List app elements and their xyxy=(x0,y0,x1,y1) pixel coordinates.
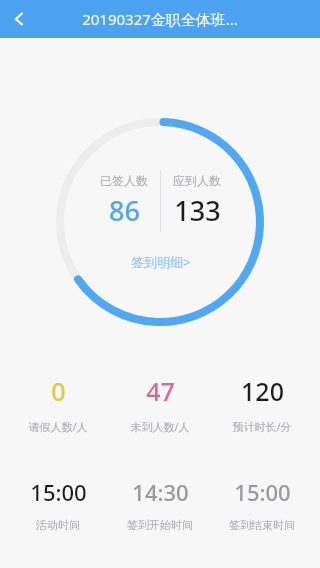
button[interactable]: 14:30 xyxy=(110,475,210,534)
button[interactable]: 15:00 xyxy=(212,475,312,534)
staticText: 应到人数 xyxy=(173,173,221,188)
staticText: 86 xyxy=(109,192,140,229)
button[interactable]: 15:00 xyxy=(8,475,108,534)
staticText: 20190327金职全体班... xyxy=(82,9,238,29)
staticText: 已签人数 xyxy=(100,173,148,188)
staticText: 请假人数/人 xyxy=(28,419,88,434)
staticText: 120 xyxy=(241,374,284,408)
staticText: 活动时间 xyxy=(36,518,80,532)
staticText: 签到开始时间 xyxy=(127,518,193,532)
button[interactable]: 签到明细> xyxy=(123,250,199,274)
staticText: 预计时长/分 xyxy=(232,419,292,434)
button[interactable]: 47 xyxy=(110,372,210,436)
button[interactable]: Back xyxy=(0,0,38,38)
staticText: 133 xyxy=(174,192,221,229)
staticText: 未到人数/人 xyxy=(130,419,190,434)
button[interactable]: 120 xyxy=(212,372,312,436)
staticText: 47 xyxy=(146,374,175,408)
staticText: 0 xyxy=(51,374,66,408)
staticText: 签到明细> xyxy=(131,253,191,271)
staticText: 15:00 xyxy=(30,477,87,507)
button[interactable]: 0 xyxy=(8,372,108,436)
staticText: 15:00 xyxy=(234,477,291,507)
staticText: 14:30 xyxy=(132,477,189,507)
staticText: 签到结束时间 xyxy=(229,518,295,532)
